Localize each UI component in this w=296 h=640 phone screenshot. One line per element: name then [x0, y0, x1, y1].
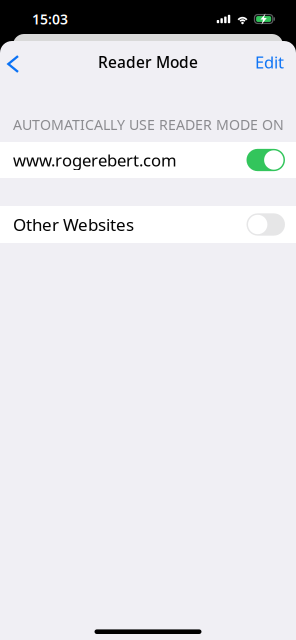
button[interactable]: Other Websites [0, 206, 296, 243]
staticText: Edit [255, 51, 284, 73]
button[interactable]: Edit [245, 43, 296, 81]
staticText: Reader Mode [98, 51, 198, 73]
staticText: www.rogerebert.com [13, 149, 177, 171]
staticText: AUTOMATICALLY USE READER MODE ON [13, 115, 284, 134]
staticText: 15:03 [32, 9, 68, 29]
staticText: Other Websites [13, 213, 134, 236]
button[interactable]: Back [0, 45, 28, 79]
button[interactable]: www.rogerebert.com [0, 142, 296, 178]
